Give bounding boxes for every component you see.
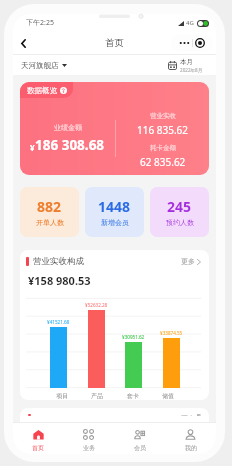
staticText: 首页 — [105, 37, 124, 49]
button[interactable]: 1448 — [85, 187, 144, 237]
staticText: 更多 — [181, 414, 195, 416]
button[interactable]: 首页 — [13, 423, 63, 454]
staticText: 数据概览 — [27, 86, 57, 95]
staticText: 882 — [37, 197, 62, 216]
button[interactable]: 更多 — [181, 414, 201, 416]
staticText: 天河旗舰店 — [21, 61, 59, 70]
button[interactable]: 天河旗舰店 — [21, 61, 67, 70]
button[interactable]: 882 — [20, 187, 79, 237]
staticText: ¥ — [30, 142, 35, 153]
button[interactable]: 本月 — [168, 58, 203, 73]
staticText: 245 — [167, 197, 192, 216]
staticText: 储值 — [162, 392, 174, 400]
staticText: 业绩金额 — [54, 123, 82, 132]
staticText: 产品 — [91, 392, 103, 400]
staticText: ¥30951.62 — [122, 334, 145, 340]
staticText: 本月 — [180, 58, 193, 66]
button[interactable]: More options — [171, 35, 213, 51]
staticText: 套卡 — [127, 392, 139, 400]
staticText: 2022年8月 — [180, 67, 203, 73]
button[interactable]: 更多 — [181, 257, 201, 266]
button[interactable]: 业务 — [63, 423, 114, 454]
staticText: 1448 — [98, 197, 131, 216]
staticText: 首页 — [32, 444, 44, 452]
staticText: 62 835.62 — [140, 155, 186, 169]
staticText: 更多 — [181, 257, 195, 266]
staticText: 186 308.68 — [35, 136, 105, 154]
staticText: 会员 — [134, 444, 146, 452]
staticText: 营业实收 — [150, 112, 176, 120]
button[interactable]: 我的 — [165, 423, 216, 454]
staticText: 营业实收构成 — [33, 256, 84, 267]
staticText: 项目 — [56, 392, 68, 400]
staticText: 新增会员 — [101, 218, 129, 227]
staticText: ¥33874.55 — [160, 330, 183, 336]
staticText: 116 835.62 — [137, 123, 189, 137]
staticText: 耗卡金额 — [150, 144, 176, 152]
button[interactable]: 数据概览 — [20, 82, 209, 175]
staticText: 开单人数 — [36, 218, 64, 227]
staticText: 业务 — [83, 444, 95, 452]
staticText: ¥41521.68 — [47, 319, 70, 325]
button[interactable]: Back — [14, 34, 32, 52]
staticText: 我的 — [185, 444, 197, 452]
staticText: ¥158 980.53 — [28, 273, 91, 288]
button[interactable]: 会员 — [114, 423, 165, 454]
staticText: ¥52632.28 — [85, 302, 108, 308]
staticText: 预约人数 — [166, 218, 194, 227]
staticText: 下午2:25 — [26, 18, 54, 28]
staticText: 4G — [186, 19, 194, 27]
button[interactable]: 245 — [150, 187, 209, 237]
